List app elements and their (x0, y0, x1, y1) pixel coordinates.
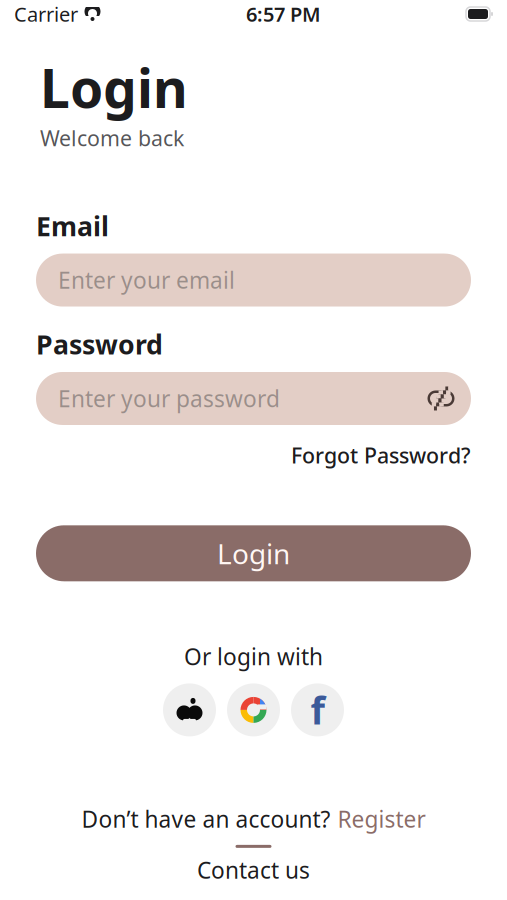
staticText: Login (217, 535, 290, 572)
staticText: Enter your password (58, 383, 280, 413)
button[interactable]: Register (337, 804, 425, 834)
staticText: Don’t have an account? (81, 804, 330, 834)
button[interactable]: Show password (423, 380, 459, 416)
staticText: Register (337, 804, 425, 834)
staticText: Login (40, 52, 188, 123)
staticText: Password (36, 327, 163, 362)
staticText: f (310, 685, 324, 735)
staticText: Or login with (184, 641, 323, 671)
button[interactable]: Login (36, 525, 471, 581)
staticText: Carrier (14, 1, 78, 27)
staticText: Welcome back (40, 124, 184, 152)
button[interactable]: Sign in with Google (227, 683, 280, 736)
button[interactable]: Sign in with Facebook (291, 683, 344, 736)
staticText: Contact us (197, 855, 310, 885)
staticText: Enter your email (58, 265, 235, 295)
staticText: 6:57 PM (246, 1, 321, 27)
button[interactable]: Forgot Password? (291, 437, 471, 473)
button[interactable]: Contact us (197, 855, 310, 885)
button[interactable]: Sign in with Apple (163, 683, 216, 736)
staticText: Email (36, 208, 109, 244)
staticText: Forgot Password? (291, 441, 471, 469)
